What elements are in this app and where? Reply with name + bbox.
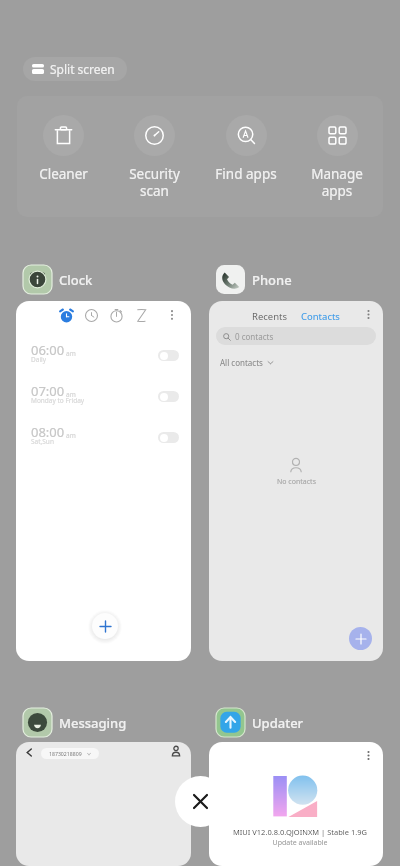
- staticText: am: [66, 431, 76, 440]
- button[interactable]: Add contact: [349, 627, 372, 650]
- button[interactable]: Toggle 06:00 alarm: [158, 350, 179, 361]
- staticText: 08:00: [31, 423, 65, 441]
- staticText: Update available: [213, 838, 383, 848]
- button[interactable]: [16, 258, 116, 300]
- button[interactable]: More options: [209, 742, 383, 866]
- button[interactable]: [209, 258, 309, 300]
- button[interactable]: Manage apps: [295, 115, 379, 200]
- button[interactable]: Close all apps: [175, 776, 226, 827]
- button[interactable]: Contact details: [168, 743, 184, 759]
- staticText: 07:00: [31, 382, 65, 400]
- staticText: Cleaner: [39, 165, 88, 183]
- button[interactable]: 06:00: [16, 338, 191, 374]
- button[interactable]: Toggle 07:00 alarm: [158, 391, 179, 402]
- button[interactable]: Back: [20, 743, 38, 761]
- staticText: Security scan: [129, 165, 180, 200]
- button[interactable]: Recents: [252, 310, 288, 323]
- staticText: Messaging: [59, 714, 127, 732]
- button[interactable]: Contacts: [301, 310, 340, 323]
- button[interactable]: Recents: [209, 301, 383, 661]
- staticText: Split screen: [50, 61, 115, 77]
- staticText: am: [66, 390, 76, 399]
- staticText: Daily: [31, 355, 47, 364]
- button[interactable]: World clock: [80, 304, 102, 326]
- staticText: No contacts: [277, 477, 316, 487]
- button[interactable]: [16, 701, 136, 743]
- button[interactable]: Split screen: [23, 57, 127, 81]
- staticText: Clock: [59, 271, 93, 289]
- staticText: Phone: [252, 271, 292, 289]
- button[interactable]: Timer: [130, 304, 152, 326]
- staticText: 0 contacts: [235, 331, 274, 342]
- button[interactable]: Alarms: [16, 301, 191, 661]
- button[interactable]: More options: [359, 746, 377, 764]
- staticText: Monday to Friday: [31, 396, 85, 405]
- staticText: Manage apps: [311, 165, 363, 200]
- button[interactable]: Alarms: [55, 304, 77, 326]
- button[interactable]: Find apps: [204, 115, 288, 183]
- staticText: 06:00: [31, 341, 65, 359]
- staticText: am: [66, 349, 76, 358]
- staticText: All contacts: [220, 357, 263, 368]
- button[interactable]: Stopwatch: [105, 304, 127, 326]
- button[interactable]: 07:00: [16, 379, 191, 415]
- button[interactable]: Toggle 08:00 alarm: [158, 432, 179, 443]
- staticText: 18730218809: [49, 750, 82, 757]
- staticText: Find apps: [215, 165, 277, 183]
- button[interactable]: 18730218809: [41, 748, 99, 759]
- staticText: Updater: [252, 714, 304, 732]
- button[interactable]: Security scan: [112, 115, 196, 200]
- button[interactable]: Cleaner: [21, 115, 105, 183]
- staticText: MIUI V12.0.8.0.QJOINXM | Stable 1.9G: [213, 827, 383, 837]
- button[interactable]: 0 contacts: [216, 327, 376, 345]
- button[interactable]: 08:00: [16, 420, 191, 456]
- staticText: Sat,Sun: [31, 437, 54, 446]
- button[interactable]: Add alarm: [92, 613, 118, 639]
- button[interactable]: All contacts: [220, 357, 274, 368]
- button[interactable]: [209, 701, 309, 743]
- button[interactable]: More options: [162, 305, 182, 325]
- button[interactable]: Back: [16, 742, 191, 866]
- button[interactable]: More options: [359, 305, 377, 323]
